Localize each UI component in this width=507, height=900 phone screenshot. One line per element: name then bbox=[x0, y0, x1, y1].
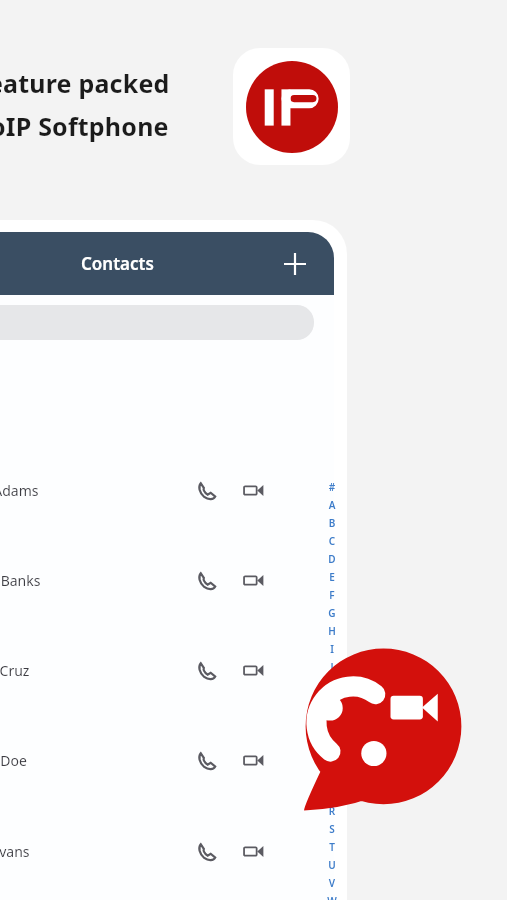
button[interactable]: Erin Evans bbox=[0, 820, 334, 882]
staticText: B bbox=[322, 516, 342, 530]
staticText: Contacts bbox=[81, 252, 154, 275]
button[interactable]: Alex Adams bbox=[0, 459, 334, 521]
staticText: R bbox=[322, 804, 342, 818]
button[interactable]: Dana Doe bbox=[0, 729, 334, 791]
button[interactable]: Carla Cruz bbox=[0, 639, 334, 701]
button[interactable]: Video call Erin Evans bbox=[234, 832, 272, 870]
button[interactable]: Video call Brian Banks bbox=[234, 561, 272, 599]
staticText: G bbox=[322, 606, 342, 620]
staticText: O bbox=[322, 750, 342, 764]
button[interactable]: Add contact bbox=[276, 245, 314, 283]
staticText: T bbox=[322, 840, 342, 854]
staticText: H bbox=[322, 624, 342, 638]
staticText: Carla Cruz bbox=[0, 661, 187, 680]
staticText: Alex Adams bbox=[0, 481, 187, 500]
staticText: I bbox=[322, 642, 342, 656]
staticText: M bbox=[322, 714, 342, 728]
staticText: U bbox=[322, 858, 342, 872]
staticText: C bbox=[322, 534, 342, 548]
staticText: S bbox=[322, 822, 342, 836]
button[interactable]: Brian Banks bbox=[0, 549, 334, 611]
staticText: Brian Banks bbox=[0, 571, 187, 590]
staticText: Feature packed bbox=[0, 66, 170, 100]
button[interactable]: Video call Alex Adams bbox=[234, 471, 272, 509]
button[interactable]: Call Dana Doe bbox=[187, 741, 225, 779]
staticText: Erin Evans bbox=[0, 842, 187, 861]
button[interactable]: Call Erin Evans bbox=[187, 832, 225, 870]
staticText: # bbox=[322, 480, 342, 494]
staticText: Dana Doe bbox=[0, 751, 187, 770]
button[interactable]: Alphabet index bbox=[322, 480, 342, 900]
button[interactable]: Call Carla Cruz bbox=[187, 651, 225, 689]
staticText: L bbox=[322, 696, 342, 710]
button[interactable]: Video call Dana Doe bbox=[234, 741, 272, 779]
staticText: V bbox=[322, 876, 342, 890]
staticText: N bbox=[322, 732, 342, 746]
staticText: A bbox=[322, 498, 342, 512]
staticText: E bbox=[322, 570, 342, 584]
button[interactable]: App icon bbox=[233, 48, 350, 165]
staticText: F bbox=[322, 588, 342, 602]
button[interactable]: Call Brian Banks bbox=[187, 561, 225, 599]
staticText: J bbox=[322, 660, 342, 674]
button[interactable]: New call bbox=[296, 645, 471, 820]
button[interactable]: Video call Carla Cruz bbox=[234, 651, 272, 689]
staticText: W bbox=[322, 894, 342, 900]
staticText: VoIP Softphone bbox=[0, 109, 169, 143]
button[interactable]: Call Alex Adams bbox=[187, 471, 225, 509]
staticText: K bbox=[322, 678, 342, 692]
staticText: D bbox=[322, 552, 342, 566]
